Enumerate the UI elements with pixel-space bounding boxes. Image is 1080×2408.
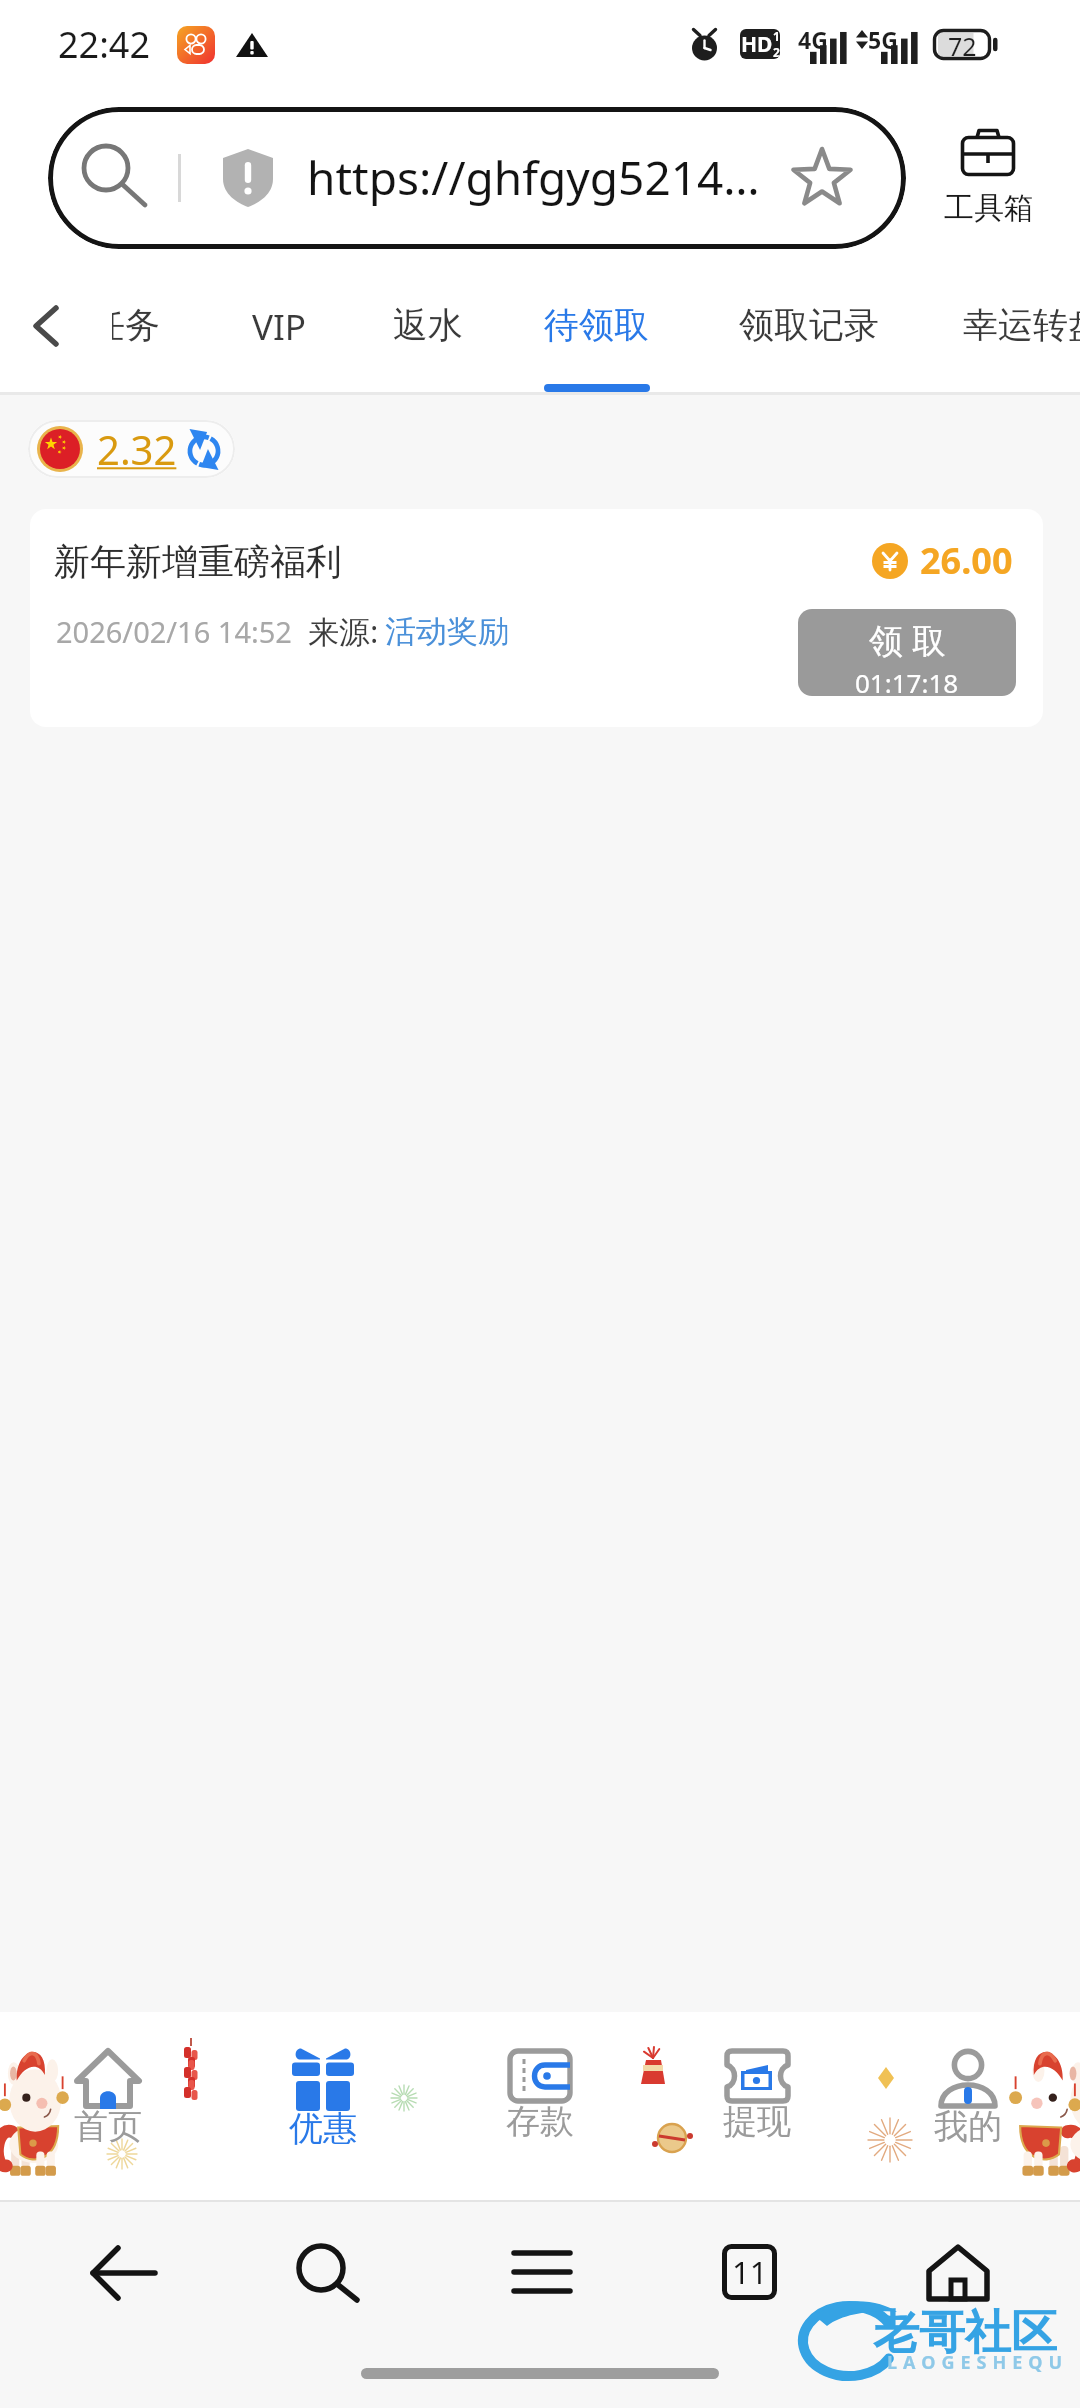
button[interactable]: 我的 bbox=[888, 2012, 1048, 2200]
staticText: 工具箱 bbox=[944, 189, 1034, 227]
staticText: 5G bbox=[868, 24, 898, 55]
button[interactable]: Home bbox=[926, 2244, 990, 2302]
staticText: 1 bbox=[773, 29, 780, 44]
staticText: 首页 bbox=[74, 2105, 142, 2148]
button[interactable]: 提现 bbox=[677, 2012, 837, 2200]
staticText: 我的 bbox=[934, 2105, 1002, 2148]
staticText: 2 bbox=[773, 44, 780, 58]
button[interactable]: 领 取 bbox=[798, 609, 1016, 696]
button[interactable]: Back bbox=[30, 300, 66, 352]
button[interactable]: 优惠 bbox=[243, 2012, 403, 2200]
staticText: 老哥社区 bbox=[873, 2304, 1057, 2362]
button[interactable]: 新年新增重磅福利 bbox=[30, 509, 1043, 727]
other: Refresh bbox=[186, 428, 222, 471]
button[interactable]: 幸运转盘 bbox=[963, 268, 1080, 392]
staticText: 活动奖励 bbox=[385, 612, 509, 651]
staticText: 26.00 bbox=[920, 536, 1013, 585]
staticText: https://ghfgyg5214… bbox=[307, 146, 760, 209]
button[interactable]: 待领取 bbox=[544, 268, 650, 392]
staticText: 领 取 bbox=[869, 617, 946, 663]
staticText: LAOGESHEQU bbox=[887, 2350, 1069, 2375]
staticText: 优惠 bbox=[289, 2107, 357, 2150]
staticText: 来源: bbox=[308, 610, 379, 652]
button[interactable]: Tabs bbox=[722, 2244, 777, 2300]
staticText: 4G bbox=[798, 24, 828, 55]
staticText: 提现 bbox=[723, 2100, 791, 2143]
staticText: 幸运转盘 bbox=[963, 303, 1080, 347]
button[interactable]: 领取记录 bbox=[739, 268, 870, 392]
staticText: 存款 bbox=[506, 2100, 574, 2143]
staticText: 待领取 bbox=[544, 303, 649, 347]
button[interactable]: 首页 bbox=[28, 2012, 188, 2200]
button[interactable]: 2.32 bbox=[36, 420, 222, 478]
button[interactable]: https://ghfgyg5214… bbox=[48, 107, 906, 249]
staticText: 2.32 bbox=[97, 422, 177, 476]
staticText: 22:42 bbox=[58, 20, 151, 69]
other: Bookmark bbox=[788, 144, 856, 212]
staticText: HD bbox=[741, 30, 773, 59]
button[interactable]: 返水 bbox=[393, 268, 459, 392]
button[interactable]: Back bbox=[89, 2244, 158, 2302]
staticText: 任务 bbox=[112, 303, 160, 347]
button[interactable]: 工具箱 bbox=[940, 118, 1035, 230]
button[interactable]: Search bbox=[295, 2242, 363, 2304]
staticText: 2026/02/16 14:52 bbox=[56, 612, 292, 651]
staticText: 返水 bbox=[393, 303, 463, 347]
button[interactable]: 任务 bbox=[112, 268, 165, 392]
staticText: 72 bbox=[948, 29, 977, 60]
staticText: 11 bbox=[732, 2251, 768, 2293]
staticText: 领取记录 bbox=[739, 303, 879, 347]
button[interactable]: Menu bbox=[512, 2250, 572, 2294]
staticText: VIP bbox=[252, 303, 307, 351]
staticText: 01:17:18 bbox=[855, 665, 959, 696]
staticText: 新年新增重磅福利 bbox=[54, 539, 342, 584]
button[interactable]: VIP bbox=[252, 268, 305, 392]
button[interactable]: 存款 bbox=[460, 2012, 620, 2200]
